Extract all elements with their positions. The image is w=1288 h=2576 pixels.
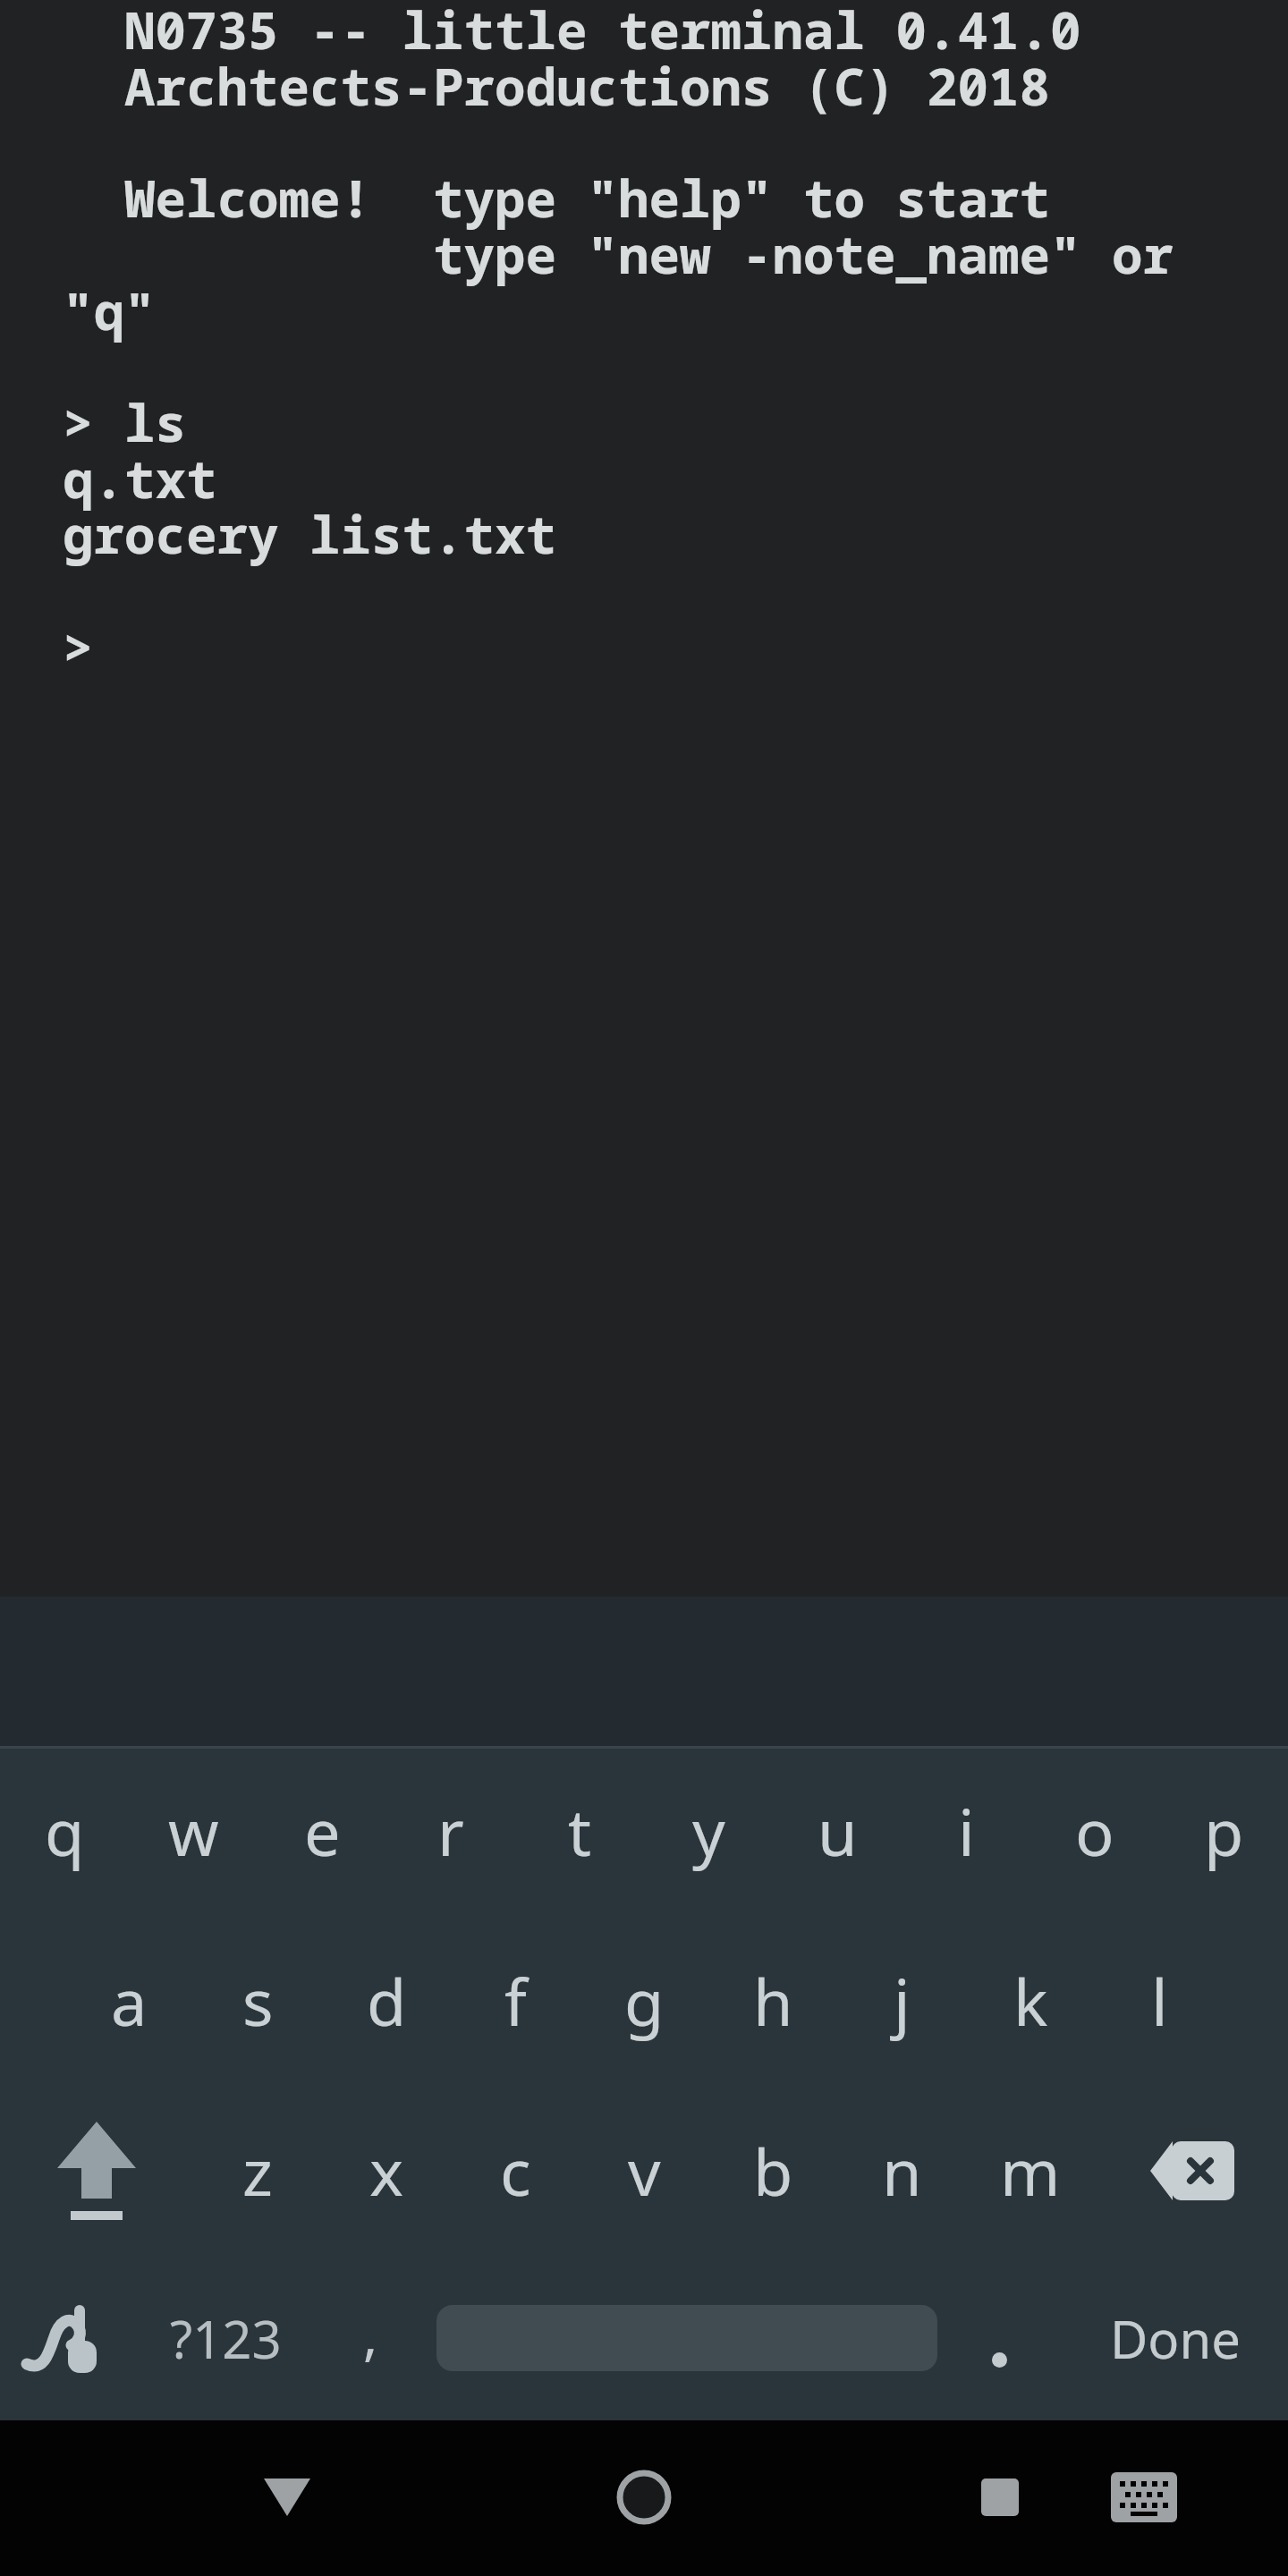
button[interactable] xyxy=(946,2444,1054,2551)
staticText: t xyxy=(568,1787,591,1875)
button[interactable]: y xyxy=(644,1746,773,1916)
staticText: > ls xyxy=(63,387,186,457)
button[interactable] xyxy=(0,2086,193,2256)
button[interactable]: r xyxy=(386,1746,515,1916)
button[interactable] xyxy=(0,2256,129,2420)
staticText: g xyxy=(624,1957,665,2045)
button[interactable]: n xyxy=(837,2086,966,2256)
button[interactable]: c xyxy=(451,2086,580,2256)
staticText: o xyxy=(1075,1787,1114,1875)
staticText: e xyxy=(304,1787,341,1875)
staticText: u xyxy=(818,1787,858,1875)
button[interactable] xyxy=(1095,2086,1288,2256)
staticText: "q" xyxy=(63,275,156,345)
staticText: k xyxy=(1013,1957,1048,2045)
button[interactable]: e xyxy=(258,1746,386,1916)
staticText: b xyxy=(753,2127,793,2215)
staticText: f xyxy=(504,1957,527,2045)
button[interactable]: h xyxy=(708,1916,837,2086)
button[interactable] xyxy=(590,2444,698,2551)
staticText: j xyxy=(894,1957,911,2045)
staticText: q.txt xyxy=(63,444,217,513)
staticText: N0735 -- little terminal 0.41.0 xyxy=(63,0,1081,64)
button[interactable]: b xyxy=(708,2086,837,2256)
button[interactable]: m xyxy=(966,2086,1095,2256)
button[interactable]: i xyxy=(902,1746,1030,1916)
button[interactable]: ?123 xyxy=(129,2256,322,2420)
button[interactable]: w xyxy=(129,1746,258,1916)
button[interactable]: o xyxy=(1030,1746,1159,1916)
button[interactable]: , xyxy=(322,2256,419,2420)
button[interactable]: x xyxy=(322,2086,451,2256)
staticText: w xyxy=(168,1787,219,1875)
button[interactable]: j xyxy=(837,1916,966,2086)
staticText: d xyxy=(367,1957,407,2045)
staticText: s xyxy=(242,1957,274,2045)
staticText: v xyxy=(628,2127,661,2215)
button[interactable]: d xyxy=(322,1916,451,2086)
staticText: l xyxy=(1151,1957,1168,2045)
staticText: h xyxy=(753,1957,793,2045)
staticText: > xyxy=(63,612,94,682)
staticText: n xyxy=(882,2127,922,2215)
staticText: c xyxy=(500,2127,531,2215)
staticText: , xyxy=(363,2298,378,2371)
button[interactable]: s xyxy=(193,1916,322,2086)
staticText: a xyxy=(111,1957,148,2045)
staticText: Done xyxy=(1110,2303,1241,2374)
staticText: type "new -note_name" or xyxy=(63,219,1174,289)
staticText: x xyxy=(369,2127,404,2215)
staticText: m xyxy=(1000,2127,1061,2215)
button[interactable] xyxy=(233,2444,341,2551)
staticText: q xyxy=(45,1787,85,1875)
button[interactable]: l xyxy=(1095,1916,1224,2086)
staticText: ?123 xyxy=(170,2303,282,2374)
staticText: z xyxy=(242,2127,273,2215)
button[interactable]: a xyxy=(64,1916,193,2086)
button[interactable]: t xyxy=(515,1746,644,1916)
staticText: Welcome! type "help" to start xyxy=(63,163,1050,233)
button[interactable] xyxy=(936,2256,1063,2420)
staticText: y xyxy=(692,1787,725,1875)
button[interactable]: Done xyxy=(1063,2256,1288,2420)
staticText: Archtects-Productions (C) 2018 xyxy=(63,51,1050,121)
button[interactable]: p xyxy=(1159,1746,1288,1916)
button[interactable]: k xyxy=(966,1916,1095,2086)
staticText: grocery list.txt xyxy=(63,499,556,569)
button[interactable]: q xyxy=(0,1746,129,1916)
staticText: r xyxy=(437,1787,464,1875)
button[interactable]: z xyxy=(193,2086,322,2256)
button[interactable] xyxy=(1090,2444,1198,2551)
staticText: p xyxy=(1204,1787,1244,1875)
button[interactable] xyxy=(419,2256,955,2420)
button[interactable]: g xyxy=(580,1916,708,2086)
button[interactable]: f xyxy=(451,1916,580,2086)
button[interactable]: u xyxy=(773,1746,902,1916)
staticText: i xyxy=(958,1787,975,1875)
button[interactable]: v xyxy=(580,2086,708,2256)
